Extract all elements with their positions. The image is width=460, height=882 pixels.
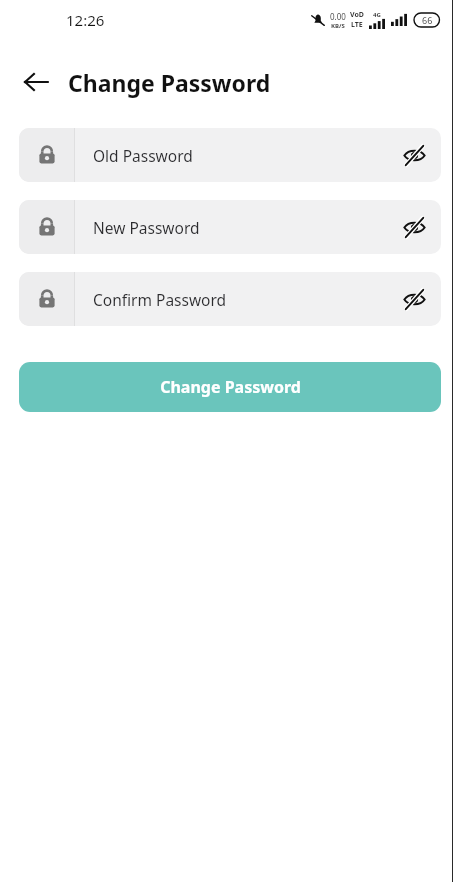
button[interactable]: Old Password: [19, 128, 441, 182]
staticText: 12:26: [66, 10, 105, 30]
button[interactable]: New Password: [19, 200, 441, 254]
staticText: Old Password: [93, 145, 387, 166]
staticText: KB/S: [331, 22, 345, 30]
button[interactable]: Change Password: [19, 362, 441, 412]
staticText: Change Password: [68, 67, 271, 98]
staticText: 66: [422, 14, 433, 26]
staticText: LTE: [351, 20, 363, 30]
staticText: 0.00: [330, 11, 346, 22]
button[interactable]: Show password: [387, 128, 441, 182]
staticText: New Password: [93, 217, 387, 238]
button[interactable]: Confirm Password: [19, 272, 441, 326]
staticText: Confirm Password: [93, 289, 387, 310]
button[interactable]: Show password: [387, 272, 441, 326]
button[interactable]: Show password: [387, 200, 441, 254]
button[interactable]: Back: [14, 60, 58, 104]
staticText: 4G: [373, 11, 381, 19]
staticText: VoD: [350, 10, 364, 20]
staticText: Change Password: [160, 376, 301, 398]
